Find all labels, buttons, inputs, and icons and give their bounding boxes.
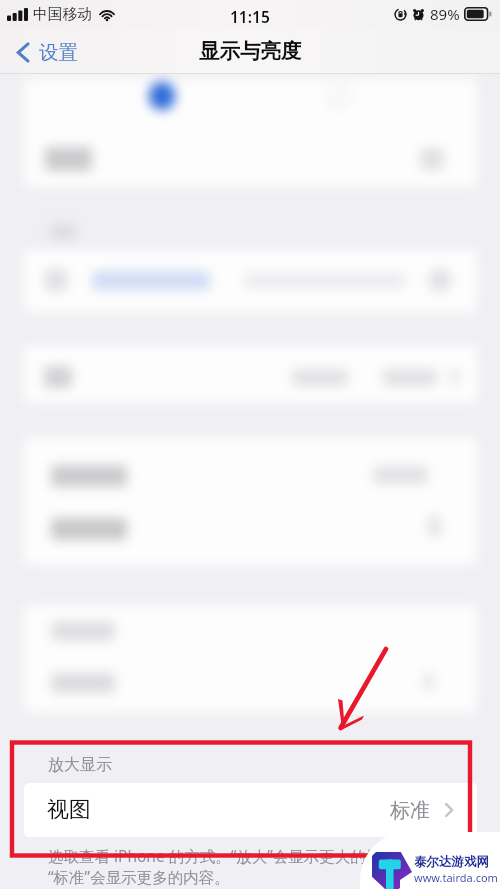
staticText: 放大显示 (48, 755, 112, 775)
staticText: 泰尔达游戏网 (414, 854, 489, 870)
staticText: 选取查看 iPhone 的方式。“放大”会显示更大的控件。 “标准”会显示更多的… (48, 845, 413, 888)
staticText: 设置 (39, 40, 78, 65)
staticText: www.tairda.com (414, 870, 498, 885)
button[interactable]: 视图 (24, 783, 477, 837)
staticText: 11:15 (230, 6, 270, 27)
staticText: 89% (430, 4, 460, 24)
staticText: 标准 (390, 798, 430, 823)
button[interactable]: 返回设置 (0, 34, 90, 71)
staticText: 视图 (47, 796, 91, 824)
staticText: 中国移动 (33, 5, 93, 24)
staticText: 显示与亮度 (199, 38, 302, 64)
